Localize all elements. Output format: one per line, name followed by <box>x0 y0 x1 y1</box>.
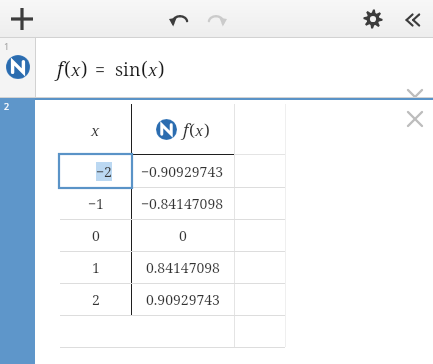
button[interactable]: −2 <box>60 155 131 187</box>
staticText: 0.90929743 <box>146 290 220 309</box>
staticText: x <box>71 58 81 81</box>
button[interactable]: Function color <box>6 55 30 79</box>
staticText: ( <box>64 56 71 82</box>
staticText: 0 <box>92 226 100 245</box>
button[interactable]: 2 <box>0 98 35 364</box>
staticText: −2 <box>96 162 112 181</box>
staticText: ( <box>141 56 148 82</box>
button[interactable]: x <box>60 104 131 155</box>
button[interactable]: −1 <box>60 187 131 219</box>
staticText: 2 <box>4 100 10 112</box>
staticText: ) <box>81 56 88 82</box>
staticText: sin <box>115 57 141 82</box>
button[interactable]: Collapse panel <box>398 6 426 34</box>
staticText: x <box>195 120 204 140</box>
button[interactable]: Undo <box>166 6 194 34</box>
button[interactable]: Delete <box>404 108 426 130</box>
staticText: 1 <box>92 258 100 277</box>
staticText: 0.84147098 <box>146 258 220 277</box>
staticText: 2 <box>92 290 100 309</box>
staticText: ( <box>189 118 195 141</box>
staticText: −0.90929743 <box>141 162 224 181</box>
button[interactable]: 2 <box>60 283 131 315</box>
button[interactable]: 1 <box>60 251 131 283</box>
button[interactable]: f <box>131 104 234 155</box>
staticText: f <box>57 56 64 82</box>
staticText: = <box>95 57 106 82</box>
button[interactable]: Delete <box>404 86 426 108</box>
staticText: ) <box>158 56 165 82</box>
staticText: −0.84147098 <box>141 194 224 213</box>
staticText: x <box>91 120 100 140</box>
button[interactable]: Settings <box>360 6 386 32</box>
staticText: 1 <box>4 40 10 52</box>
button[interactable]: 1 <box>0 38 35 98</box>
staticText: −1 <box>88 194 104 213</box>
staticText: x <box>148 58 158 81</box>
staticText: ) <box>204 118 210 141</box>
button[interactable]: −0.90929743 <box>131 155 234 187</box>
button[interactable]: −0.84147098 <box>131 187 234 219</box>
button[interactable]: 0 <box>60 219 131 251</box>
button[interactable]: 0.84147098 <box>131 251 234 283</box>
button[interactable]: 0 <box>131 219 234 251</box>
staticText: f <box>183 118 189 141</box>
staticText: 0 <box>179 226 187 245</box>
button[interactable]: Add expression <box>8 5 36 33</box>
button[interactable]: Redo <box>202 6 230 34</box>
button[interactable]: 0.90929743 <box>131 283 234 315</box>
